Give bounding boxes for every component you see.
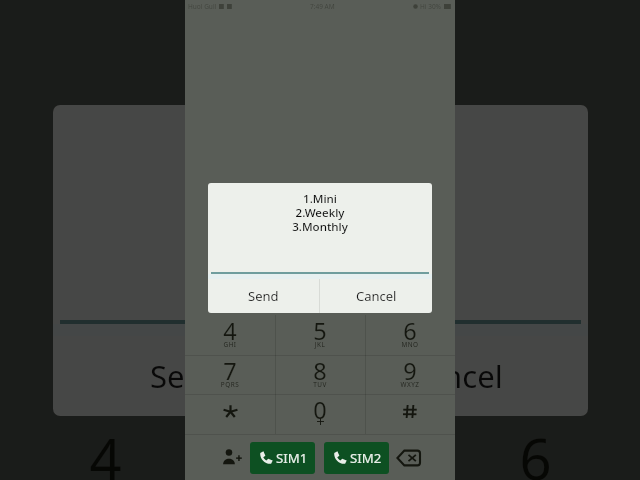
button[interactable]: Cancel (321, 336, 588, 416)
staticText: Hi 30% (420, 2, 442, 11)
staticText: SIM1 (276, 449, 308, 467)
staticText: 4 (185, 315, 275, 347)
staticText: 7 (185, 355, 275, 387)
staticText: 1.Mini 2.Weekly 3.Monthly (53, 123, 588, 229)
button[interactable]: Send (208, 279, 319, 313)
staticText: JKL (275, 340, 365, 349)
button[interactable]: Backspace (397, 450, 420, 466)
button[interactable] (365, 394, 455, 434)
staticText: TUV (275, 380, 365, 389)
button[interactable]: 6 (428, 421, 640, 480)
staticText: Send (150, 355, 223, 397)
button[interactable]: 5 (213, 421, 428, 480)
button[interactable]: 8 (275, 355, 365, 395)
button[interactable] (185, 394, 275, 434)
staticText: Cancel (406, 355, 503, 397)
button[interactable]: 4 (0, 421, 213, 480)
button[interactable]: SIM1 (250, 442, 315, 474)
staticText: 4 (0, 420, 213, 480)
staticText: 6 (428, 420, 640, 480)
button[interactable]: 7 (185, 355, 275, 395)
staticText: GHI (185, 340, 275, 349)
staticText: 7:49 AM (310, 2, 335, 11)
staticText: 6 (365, 315, 455, 347)
staticText: Huol Gull (188, 2, 217, 11)
staticText: MNO (365, 340, 455, 349)
staticText: SIM2 (350, 449, 382, 467)
button[interactable]: Send (53, 336, 319, 416)
button[interactable]: Add contact (221, 447, 242, 468)
button[interactable]: 9 (365, 355, 455, 395)
staticText: 8 (275, 355, 365, 387)
staticText: 9 (365, 355, 455, 387)
button[interactable]: SIM2 (324, 442, 389, 474)
staticText: 5 (275, 315, 365, 347)
button[interactable]: 5 (275, 315, 365, 355)
button[interactable]: 0 (275, 394, 365, 434)
staticText: 5 (213, 420, 428, 480)
button[interactable]: Cancel (320, 279, 432, 313)
button[interactable]: 6 (365, 315, 455, 355)
staticText: Send (248, 287, 279, 305)
staticText: WXYZ (365, 380, 455, 389)
staticText: 1.Mini 2.Weekly 3.Monthly (208, 191, 432, 235)
staticText: PQRS (185, 380, 275, 389)
staticText: 0 (275, 394, 365, 426)
staticText: Cancel (356, 287, 397, 305)
button[interactable]: 4 (185, 315, 275, 355)
